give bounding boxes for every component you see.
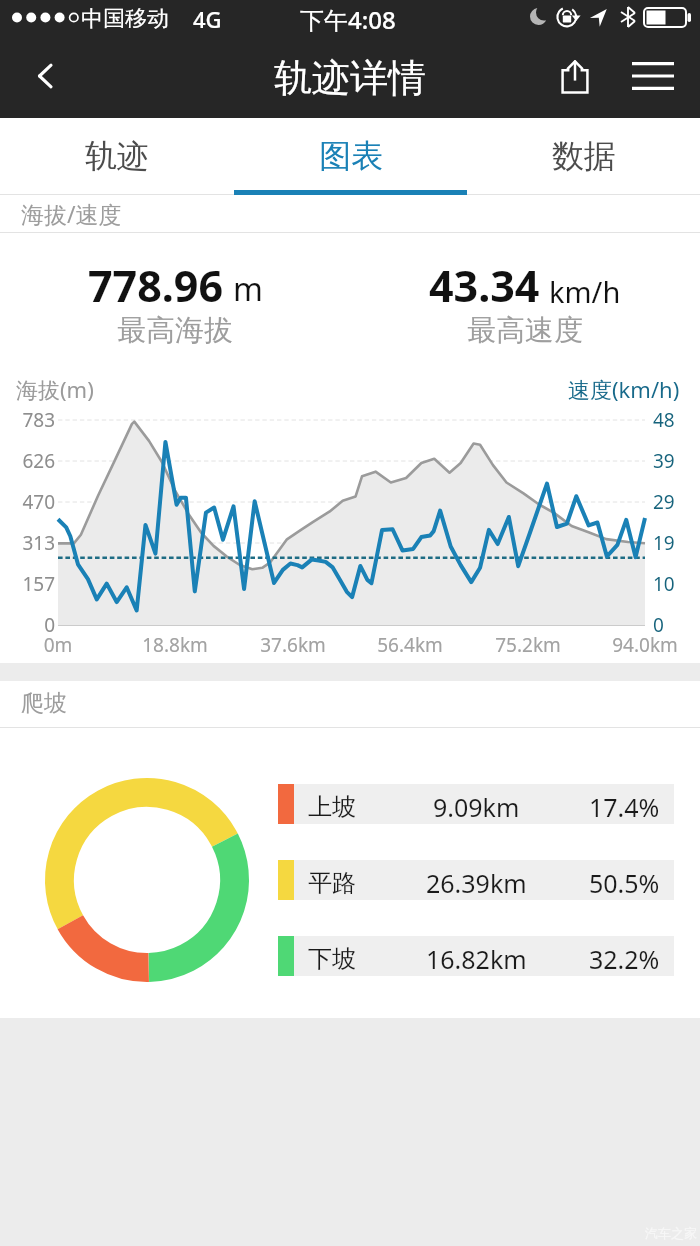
staticText: 下坡	[308, 944, 356, 974]
staticText: 19	[653, 530, 675, 556]
button[interactable]: 图表	[234, 118, 467, 195]
staticText: 50.5%	[589, 866, 660, 900]
staticText: 平路	[308, 868, 356, 898]
staticText: 32.2%	[589, 942, 660, 976]
staticText: 海拔/速度	[21, 198, 122, 229]
staticText: 75.2km	[468, 632, 588, 658]
staticText: 313	[0, 530, 55, 556]
staticText: 17.4%	[589, 790, 660, 824]
button[interactable]: 上坡	[278, 784, 674, 824]
staticText: 速度(km/h)	[568, 374, 680, 404]
staticText: 海拔(m)	[16, 374, 94, 404]
staticText: 94.0km	[585, 632, 700, 658]
staticText: 最高速度	[467, 312, 583, 349]
staticText: 轨迹	[85, 136, 149, 176]
staticText: 10	[653, 571, 675, 597]
staticText: 9.09km	[433, 790, 520, 824]
staticText: 48	[653, 407, 675, 433]
staticText: 4G	[193, 4, 222, 34]
staticText: 626	[0, 448, 55, 474]
staticText: m	[233, 267, 263, 311]
staticText: 39	[653, 448, 675, 474]
staticText: 中国移动	[81, 5, 169, 33]
staticText: 数据	[552, 136, 616, 176]
button[interactable]: 数据	[467, 118, 700, 195]
button[interactable]: 轨迹	[0, 118, 234, 195]
staticText: 18.8km	[115, 632, 235, 658]
staticText: 470	[0, 489, 55, 515]
staticText: 783	[0, 407, 55, 433]
staticText: 图表	[319, 136, 383, 176]
staticText: 157	[0, 571, 55, 597]
staticText: 56.4km	[350, 632, 470, 658]
staticText: km/h	[549, 272, 621, 311]
staticText: 最高海拔	[117, 312, 233, 349]
staticText: 0	[653, 612, 664, 638]
button[interactable]: 平路	[278, 860, 674, 900]
staticText: 43.34	[429, 256, 540, 315]
staticText: 26.39km	[426, 866, 527, 900]
button[interactable]: Back	[0, 33, 92, 118]
staticText: 16.82km	[426, 942, 527, 976]
staticText: 汽车之家	[645, 1225, 697, 1241]
button[interactable]: 下坡	[278, 936, 674, 976]
staticText: 29	[653, 489, 675, 515]
staticText: 778.96	[88, 256, 224, 315]
staticText: 轨迹详情	[274, 54, 426, 102]
staticText: 爬坡	[21, 689, 67, 718]
staticText: 0m	[0, 632, 118, 658]
button[interactable]: Menu	[614, 33, 700, 118]
staticText: 0	[0, 612, 55, 638]
staticText: 下午4:08	[300, 3, 396, 36]
staticText: 上坡	[308, 792, 356, 822]
staticText: 37.6km	[233, 632, 353, 658]
button[interactable]: Share	[536, 33, 614, 118]
